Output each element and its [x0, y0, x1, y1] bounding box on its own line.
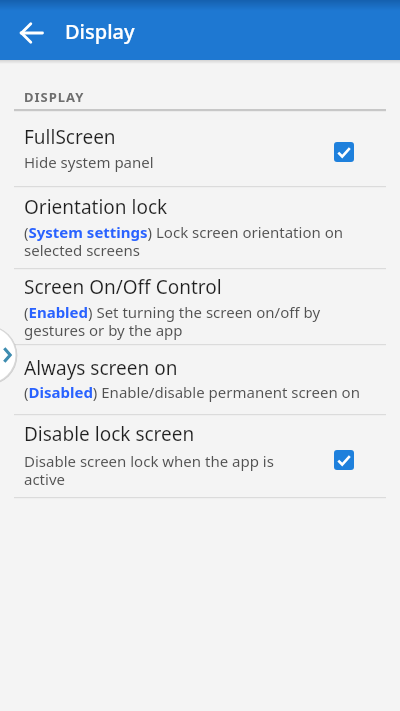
button[interactable]: Disable lock screen	[0, 415, 400, 497]
staticText: Display	[65, 18, 135, 45]
button[interactable]: FullScreen	[0, 111, 400, 187]
staticText: (Enabled) Set turning the screen on/off …	[24, 302, 396, 340]
staticText: Always screen on	[24, 355, 178, 381]
button[interactable]	[12, 13, 52, 53]
staticText: (System settings) Lock screen orientatio…	[24, 222, 396, 260]
button[interactable]: Orientation lock	[0, 187, 400, 268]
staticText: (Disabled) Enable/disable permanent scre…	[24, 382, 396, 402]
staticText: DISPLAY	[24, 88, 85, 106]
button[interactable]	[334, 450, 354, 470]
staticText: FullScreen	[24, 124, 116, 150]
staticText: Hide system panel	[24, 152, 324, 172]
button[interactable]: Always screen on	[0, 345, 400, 414]
staticText: Disable lock screen	[24, 421, 195, 447]
staticText: Disable screen lock when the app is acti…	[24, 451, 396, 489]
button[interactable]	[334, 142, 354, 162]
staticText: Screen On/Off Control	[24, 274, 222, 300]
staticText: Orientation lock	[24, 194, 168, 220]
button[interactable]: Screen On/Off Control	[0, 269, 400, 344]
button[interactable]	[0, 325, 18, 385]
